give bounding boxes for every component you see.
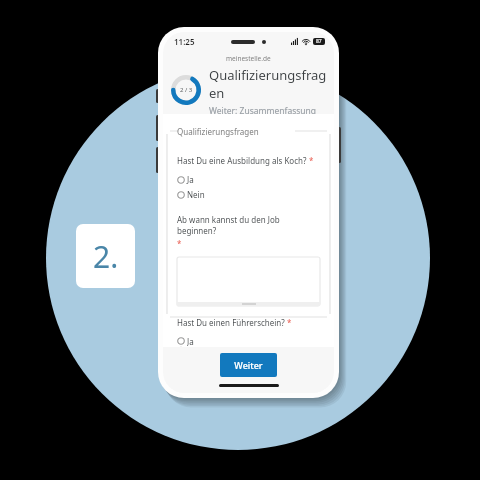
staticText: 2 / 3 (180, 86, 193, 94)
staticText: Nein (187, 189, 205, 200)
staticText: Qualifizierungsfragen (209, 66, 328, 102)
staticText: * (287, 317, 292, 328)
staticText: Weiter: Zusammenfassung (209, 105, 317, 114)
staticText: Ja (187, 336, 194, 346)
staticText: * (177, 238, 182, 249)
button[interactable]: Weiter (220, 353, 277, 377)
button[interactable]: Nein (177, 188, 205, 201)
staticText: 11:25 (174, 36, 195, 47)
button[interactable]: Ja (177, 173, 194, 186)
staticText: 87 (316, 38, 322, 45)
staticText: meinestelle.de (226, 54, 271, 63)
staticText: * (309, 155, 314, 166)
button[interactable]: Ja (177, 335, 194, 347)
staticText: Weiter (234, 359, 263, 371)
staticText: Qualifizierungsfragen (177, 126, 259, 137)
button[interactable] (177, 257, 320, 306)
staticText: Ab wann kannst du den Job beginnen? (177, 214, 320, 236)
staticText: Ja (187, 174, 194, 185)
staticText: Hast Du einen Führerschein? (177, 317, 285, 328)
staticText: 2. (93, 236, 119, 277)
staticText: Hast Du eine Ausbildung als Koch? (177, 155, 307, 166)
